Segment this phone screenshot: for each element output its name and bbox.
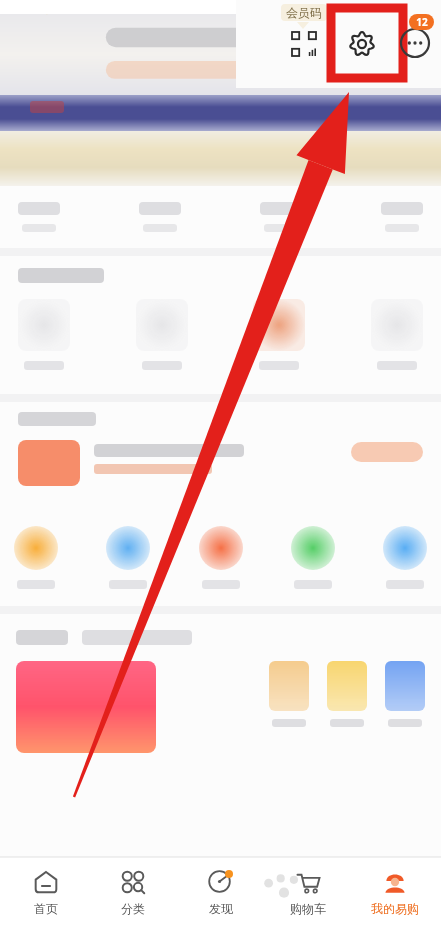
staticText: 我的易购 <box>371 901 419 916</box>
staticText: 发现 <box>209 901 233 916</box>
staticText: 会员码 <box>286 5 322 20</box>
button[interactable]: 我的易购 <box>354 866 436 918</box>
staticText: 分类 <box>121 901 145 916</box>
button[interactable]: 首页 <box>5 866 87 918</box>
staticText: 首页 <box>34 901 58 916</box>
staticText: 12 <box>416 15 428 29</box>
button[interactable]: 设置 <box>340 22 384 66</box>
button[interactable]: 会员码 <box>286 5 322 20</box>
button[interactable]: 分类 <box>92 866 174 918</box>
button[interactable]: 发现 <box>180 866 262 918</box>
staticText: 购物车 <box>290 901 326 916</box>
button[interactable]: 购物车 <box>267 866 349 918</box>
button[interactable]: 更多 <box>396 24 434 62</box>
button[interactable]: 会员码 <box>286 26 322 62</box>
